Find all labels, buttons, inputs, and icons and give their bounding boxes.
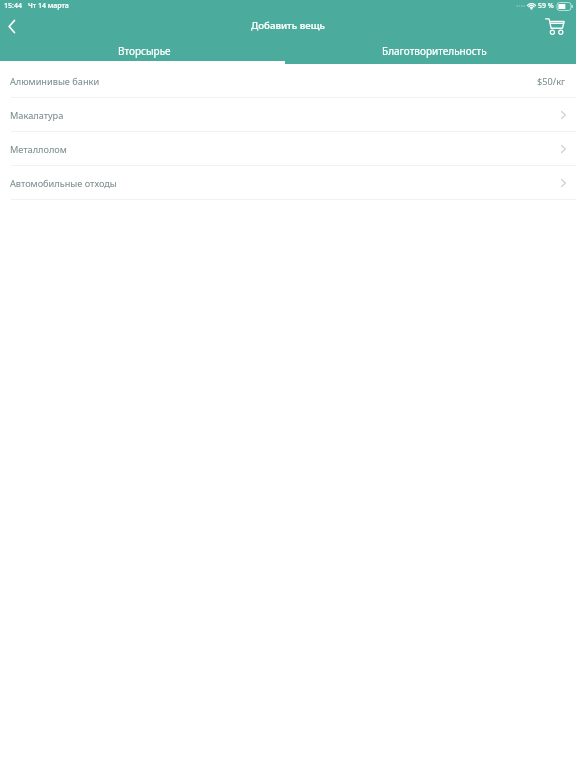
staticText: Металлолом bbox=[10, 143, 67, 156]
staticText: Благотворительность bbox=[382, 44, 487, 58]
button[interactable]: Макалатура bbox=[0, 98, 576, 131]
button[interactable]: Вторсырье bbox=[0, 38, 288, 64]
staticText: Автомобильные отходы bbox=[10, 177, 117, 190]
button[interactable]: Автомобильные отходы bbox=[0, 166, 576, 199]
staticText: 59 % bbox=[538, 1, 554, 11]
staticText: Макалатура bbox=[10, 109, 64, 122]
button[interactable]: Cart bbox=[545, 14, 565, 38]
staticText: Вторсырье bbox=[118, 44, 171, 58]
staticText: Добавить вещь bbox=[251, 19, 325, 32]
button[interactable]: Благотворительность bbox=[288, 38, 576, 64]
button[interactable]: Алюминивые банки bbox=[0, 64, 576, 97]
staticText: 15:44 bbox=[4, 1, 22, 11]
button[interactable]: Металлолом bbox=[0, 132, 576, 165]
staticText: Чт 14 марта bbox=[28, 1, 69, 11]
staticText: $50/кг bbox=[537, 75, 566, 88]
staticText: Алюминивые банки bbox=[10, 75, 100, 88]
button[interactable]: Back bbox=[0, 14, 22, 38]
